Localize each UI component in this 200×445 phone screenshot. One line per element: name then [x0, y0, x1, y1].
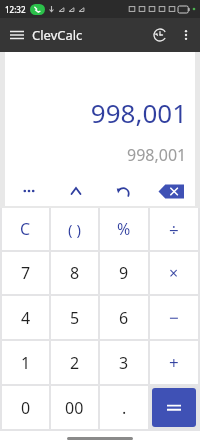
button[interactable]: 00 — [51, 386, 98, 429]
staticText: 9 — [119, 262, 129, 284]
staticText: 998,001 — [90, 95, 187, 130]
staticText: ( ) — [68, 219, 81, 239]
button[interactable]: ( ) — [51, 208, 98, 250]
button[interactable]: 0 — [2, 386, 49, 429]
staticText: 998,001 — [127, 144, 187, 166]
button[interactable]: More functions — [5, 176, 52, 206]
button[interactable]: Power — [52, 176, 99, 206]
button[interactable]: 2 — [51, 341, 98, 384]
staticText: 5 — [70, 307, 80, 329]
button[interactable] — [152, 388, 196, 427]
button[interactable]: Open navigation menu — [4, 22, 30, 48]
button[interactable]: 4 — [2, 296, 49, 339]
button[interactable]: ÷ — [150, 208, 198, 250]
staticText: 12:32 — [5, 4, 26, 15]
button[interactable]: 6 — [100, 296, 148, 339]
staticText: % — [117, 218, 131, 240]
button[interactable]: Backspace — [147, 176, 195, 206]
button[interactable]: 3 — [100, 341, 148, 384]
staticText: 0 — [21, 397, 31, 419]
staticText: C — [20, 218, 31, 240]
staticText: 1 — [21, 352, 31, 374]
button[interactable]: 9 — [100, 252, 148, 294]
staticText: ÷ — [169, 218, 179, 241]
staticText: 7 — [21, 262, 31, 284]
button[interactable]: × — [150, 252, 198, 294]
staticText: 8 — [70, 262, 80, 284]
button[interactable]: 7 — [2, 252, 49, 294]
staticText: 00 — [65, 397, 84, 419]
staticText: 6 — [119, 307, 129, 329]
staticText: 2 — [70, 352, 80, 374]
button[interactable]: History — [146, 21, 174, 49]
button[interactable]: − — [150, 296, 198, 339]
button[interactable]: . — [100, 386, 148, 429]
staticText: − — [169, 306, 179, 329]
staticText: . — [122, 397, 127, 419]
button[interactable]: Undo — [99, 176, 147, 206]
button[interactable]: + — [150, 341, 198, 384]
staticText: 4 — [21, 307, 31, 329]
staticText: × — [169, 262, 179, 284]
staticText: 3 — [119, 352, 129, 374]
staticText: ClevCalc — [32, 26, 83, 44]
button[interactable]: 8 — [51, 252, 98, 294]
button[interactable]: 5 — [51, 296, 98, 339]
button[interactable]: C — [2, 208, 49, 250]
button[interactable]: 1 — [2, 341, 49, 384]
button[interactable]: % — [100, 208, 148, 250]
button[interactable]: More options — [174, 23, 198, 47]
staticText: + — [169, 351, 179, 374]
